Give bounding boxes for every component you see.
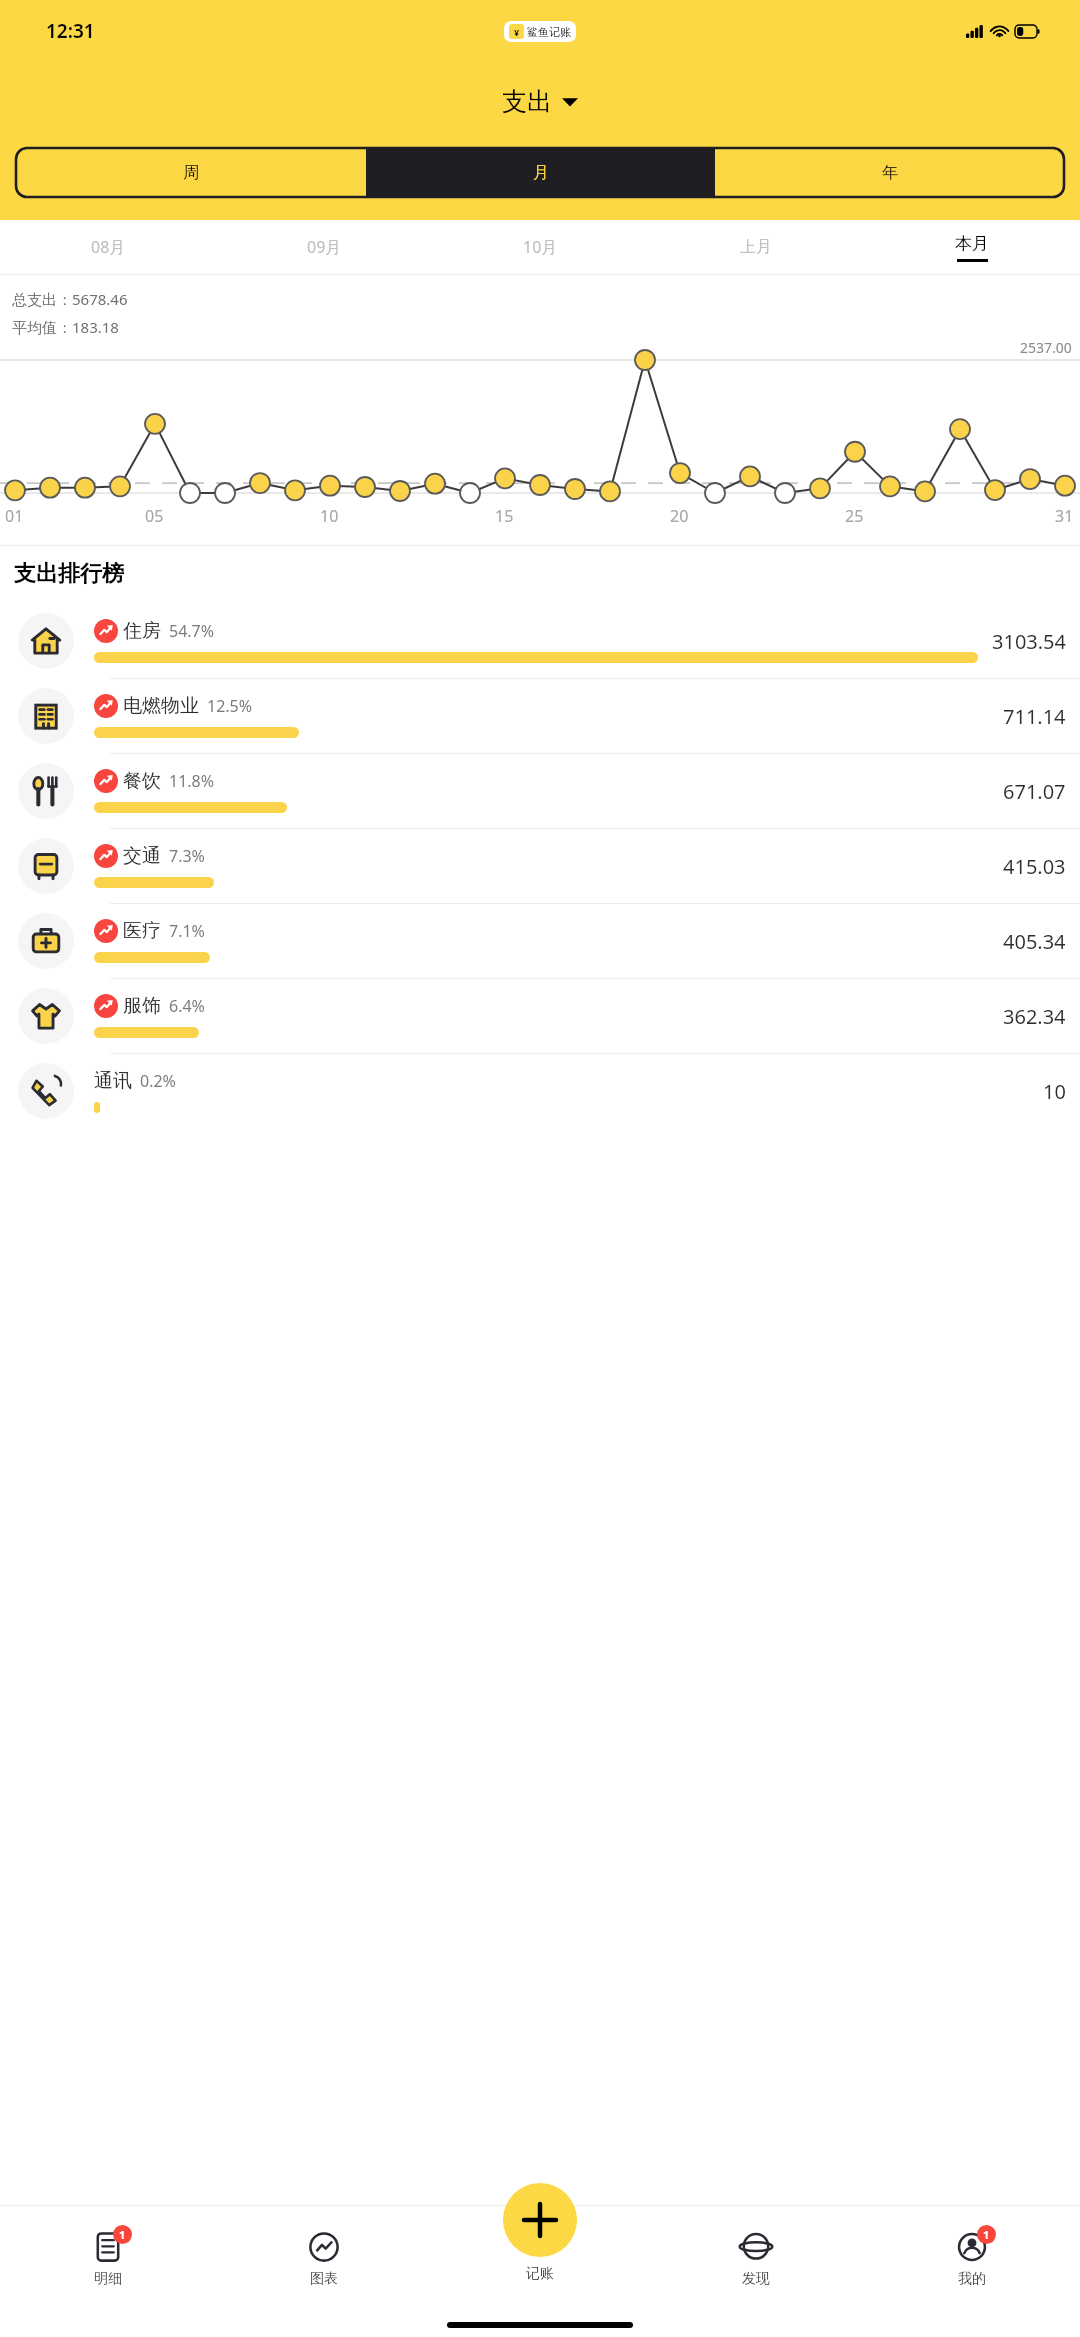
button[interactable]: 服饰: [0, 979, 1080, 1053]
staticText: 11.8%: [169, 770, 215, 792]
button[interactable]: 1: [864, 2205, 1080, 2313]
button[interactable]: 月: [366, 148, 715, 197]
staticText: 20: [670, 505, 689, 527]
staticText: 鲨鱼记账: [527, 25, 571, 39]
button[interactable]: 08月: [0, 220, 216, 274]
staticText: 01: [5, 505, 24, 527]
staticText: 1: [983, 2227, 990, 2242]
button[interactable]: 发现: [648, 2205, 864, 2313]
staticText: 10: [1043, 1078, 1066, 1105]
staticText: 支出排行榜: [14, 560, 124, 588]
staticText: 7.3%: [169, 845, 205, 867]
staticText: 本月: [955, 233, 989, 254]
staticText: 671.07: [1003, 778, 1066, 805]
staticText: 住房: [123, 619, 161, 643]
staticText: 发现: [742, 2270, 770, 2288]
staticText: 周: [183, 163, 199, 183]
staticText: 362.34: [1003, 1003, 1066, 1030]
button[interactable]: 图表: [216, 2205, 432, 2313]
staticText: 09月: [307, 236, 342, 258]
button[interactable]: 通讯: [0, 1054, 1080, 1128]
staticText: 记账: [526, 2265, 554, 2283]
staticText: 31: [1055, 505, 1074, 527]
button[interactable]: 上月: [648, 220, 864, 274]
staticText: 05: [145, 505, 164, 527]
staticText: 交通: [123, 844, 161, 868]
staticText: 3103.54: [992, 628, 1066, 655]
button[interactable]: 09月: [216, 220, 432, 274]
staticText: 08月: [91, 236, 126, 258]
staticText: 电燃物业: [123, 694, 199, 718]
staticText: 总支出：5678.46: [12, 289, 128, 309]
staticText: 12:31: [46, 18, 95, 44]
staticText: 12.5%: [207, 695, 253, 717]
staticText: 图表: [310, 2270, 338, 2288]
button[interactable]: 记账: [503, 2183, 577, 2257]
staticText: 7.1%: [169, 920, 205, 942]
button[interactable]: 医疗: [0, 904, 1080, 978]
button[interactable]: 支出: [502, 86, 578, 117]
button[interactable]: 电燃物业: [0, 679, 1080, 753]
staticText: 上月: [740, 237, 772, 257]
button[interactable]: 年: [715, 148, 1064, 197]
staticText: 医疗: [123, 919, 161, 943]
staticText: 15: [495, 505, 514, 527]
staticText: 餐饮: [123, 769, 161, 793]
staticText: 25: [845, 505, 864, 527]
staticText: 10: [320, 505, 339, 527]
staticText: 6.4%: [169, 995, 205, 1017]
staticText: 10月: [523, 236, 558, 258]
staticText: 405.34: [1003, 928, 1066, 955]
staticText: 年: [882, 163, 898, 183]
staticText: 服饰: [123, 994, 161, 1018]
staticText: 415.03: [1003, 853, 1066, 880]
staticText: 54.7%: [169, 620, 215, 642]
button[interactable]: 1: [0, 2205, 216, 2313]
staticText: 2537.00: [1020, 338, 1072, 357]
button[interactable]: 交通: [0, 829, 1080, 903]
button[interactable]: 周: [16, 148, 366, 197]
button[interactable]: 住房: [0, 604, 1080, 678]
staticText: 711.14: [1003, 703, 1066, 730]
staticText: 我的: [958, 2270, 986, 2288]
staticText: 支出: [502, 86, 552, 117]
staticText: 0.2%: [140, 1070, 176, 1092]
button[interactable]: 10月: [432, 220, 648, 274]
staticText: 明细: [94, 2270, 122, 2288]
button[interactable]: 本月: [864, 220, 1080, 274]
staticText: 月: [533, 163, 549, 183]
staticText: 平均值：183.18: [12, 317, 119, 337]
staticText: ¥: [514, 26, 520, 38]
staticText: 通讯: [94, 1069, 132, 1093]
staticText: 1: [119, 2227, 126, 2242]
button[interactable]: 餐饮: [0, 754, 1080, 828]
